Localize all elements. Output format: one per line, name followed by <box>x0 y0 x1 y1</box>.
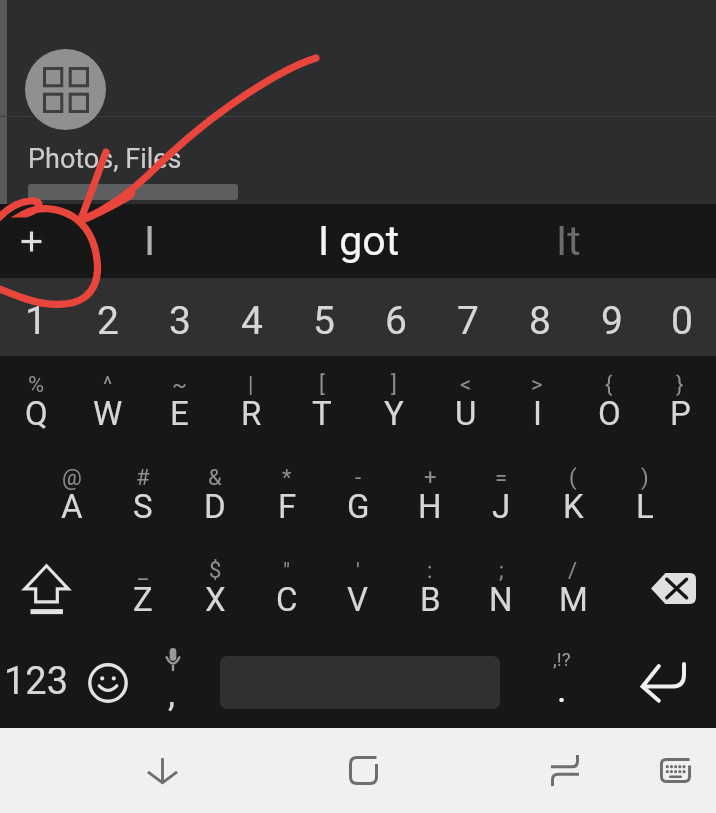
button[interactable]: 0 <box>648 278 716 356</box>
staticText: } <box>676 372 684 398</box>
staticText: 1 <box>25 298 47 344</box>
button[interactable]: > <box>501 367 573 459</box>
staticText: M <box>559 580 588 619</box>
button[interactable]: 6 <box>360 278 432 356</box>
staticText: / <box>568 558 578 584</box>
button[interactable]: 4 <box>216 278 288 356</box>
staticText: E <box>170 394 189 433</box>
button[interactable]: ' <box>322 553 394 645</box>
staticText: It <box>556 217 581 265</box>
button[interactable]: 123 <box>0 646 72 716</box>
staticText: - <box>355 465 362 491</box>
button[interactable]: 8 <box>504 278 576 356</box>
staticText: F <box>278 487 297 526</box>
button[interactable]: ,!? <box>526 639 598 709</box>
button[interactable]: [ <box>286 367 358 459</box>
staticText: 4 <box>241 298 263 344</box>
button[interactable]: Apps <box>25 49 106 130</box>
staticText: 123 <box>4 659 69 704</box>
button[interactable]: ~ <box>143 367 215 459</box>
staticText: ~ <box>172 372 187 398</box>
staticText: A <box>61 487 83 526</box>
button[interactable]: I <box>106 204 194 278</box>
staticText: I got <box>318 217 400 265</box>
button[interactable]: 1 <box>0 278 72 356</box>
button[interactable]: Home <box>323 728 403 813</box>
staticText: O <box>598 394 621 433</box>
button[interactable]: It <box>524 204 612 278</box>
button[interactable]: Add <box>0 204 66 278</box>
staticText: : <box>427 558 433 584</box>
staticText: K <box>563 487 584 526</box>
staticText: ( <box>569 465 577 491</box>
staticText: X <box>205 580 226 619</box>
button[interactable]: * <box>251 460 323 552</box>
button[interactable]: 3 <box>144 278 216 356</box>
button[interactable]: 2 <box>72 278 144 356</box>
staticText: D <box>204 487 226 526</box>
button[interactable]: 9 <box>576 278 648 356</box>
button[interactable]: Hide keyboard <box>122 728 202 813</box>
button[interactable]: & <box>179 460 251 552</box>
staticText: = <box>495 465 508 491</box>
staticText: . <box>557 669 567 711</box>
button[interactable]: I got <box>289 204 429 278</box>
staticText: Photos, Files <box>28 143 182 175</box>
button[interactable]: # <box>107 460 179 552</box>
button[interactable]: @ <box>36 460 108 552</box>
button[interactable]: Switch input method <box>525 728 605 813</box>
button[interactable]: + <box>394 460 466 552</box>
staticText: C <box>276 580 298 619</box>
staticText: $ <box>209 558 222 584</box>
staticText: Y <box>384 394 404 433</box>
staticText: | <box>248 372 254 398</box>
button[interactable]: ^ <box>72 367 144 459</box>
button[interactable]: 7 <box>432 278 504 356</box>
button[interactable]: Change keyboard <box>636 728 714 813</box>
staticText: 7 <box>457 298 479 344</box>
staticText: 8 <box>529 298 551 344</box>
button[interactable]: 5 <box>288 278 360 356</box>
button[interactable]: = <box>465 460 537 552</box>
staticText: V <box>347 580 369 619</box>
staticText: + <box>424 465 437 491</box>
staticText: ,!? <box>553 648 571 670</box>
staticText: & <box>208 465 222 491</box>
button[interactable]: " <box>251 553 323 645</box>
button[interactable]: Emoji <box>88 663 128 703</box>
button[interactable]: < <box>430 367 502 459</box>
button[interactable]: Backspace <box>651 573 696 604</box>
button[interactable]: ; <box>465 553 537 645</box>
staticText: B <box>420 580 441 619</box>
button[interactable]: / <box>537 553 609 645</box>
staticText: ; <box>499 558 504 584</box>
button[interactable]: { <box>573 367 645 459</box>
button[interactable]: ) <box>609 460 681 552</box>
staticText: ) <box>641 465 649 491</box>
button[interactable]: ( <box>537 460 609 552</box>
button[interactable]: Shift <box>23 564 70 615</box>
staticText: G <box>347 487 370 526</box>
button[interactable]: Enter <box>640 662 686 702</box>
button[interactable]: - <box>322 460 394 552</box>
button[interactable]: ] <box>358 367 430 459</box>
button[interactable]: % <box>0 367 72 459</box>
staticText: ' <box>356 558 360 584</box>
button[interactable]: : <box>394 553 466 645</box>
staticText: 2 <box>97 298 119 344</box>
staticText: Z <box>133 580 153 619</box>
staticText: ] <box>391 372 397 398</box>
staticText: S <box>133 487 153 526</box>
staticText: 3 <box>169 298 191 344</box>
staticText: W <box>93 394 123 433</box>
button[interactable]: } <box>644 367 716 459</box>
button[interactable]: | <box>215 367 287 459</box>
staticText: 5 <box>313 298 335 344</box>
button[interactable]: _ <box>107 553 179 645</box>
staticText: # <box>136 465 150 491</box>
staticText: L <box>636 487 654 526</box>
button[interactable]: , <box>136 639 208 724</box>
staticText: N <box>489 580 513 619</box>
button[interactable]: $ <box>179 553 251 645</box>
